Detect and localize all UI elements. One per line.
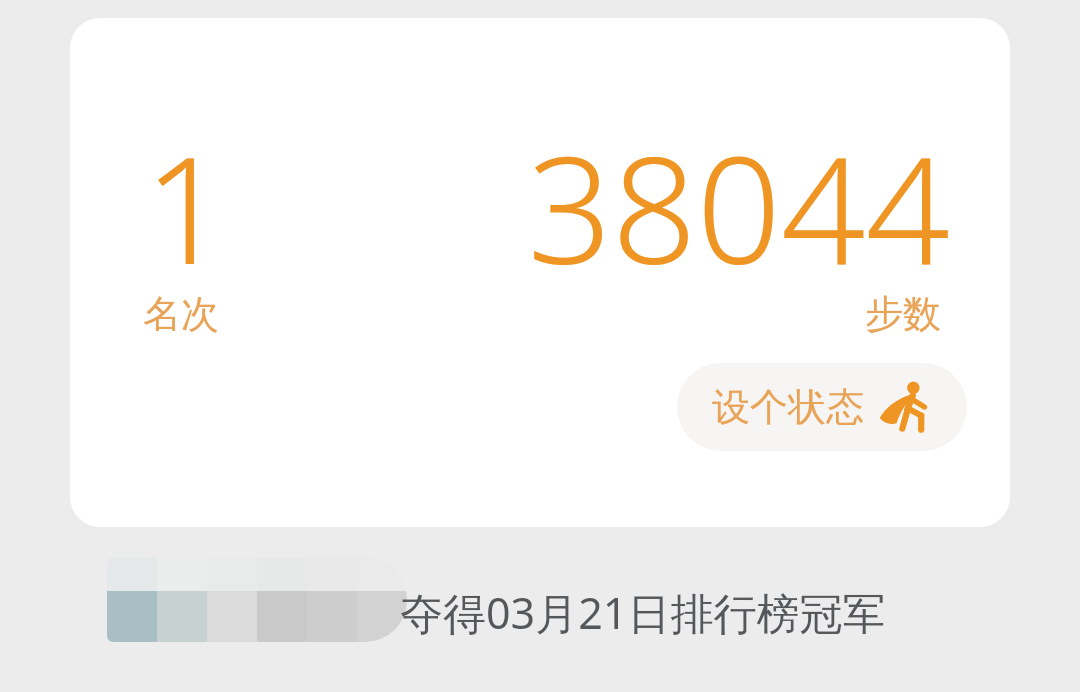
- staticText: 1: [144, 106, 229, 308]
- staticText: 名次: [143, 290, 219, 338]
- staticText: 设个状态: [712, 383, 864, 431]
- button[interactable]: 夺得03月21日排行榜冠军: [400, 583, 886, 642]
- button[interactable]: 设个状态: [677, 363, 967, 451]
- button[interactable]: 1: [70, 18, 1010, 527]
- staticText: 步数: [865, 290, 941, 338]
- other: Walking status: [878, 380, 932, 434]
- staticText: 38044: [527, 106, 950, 308]
